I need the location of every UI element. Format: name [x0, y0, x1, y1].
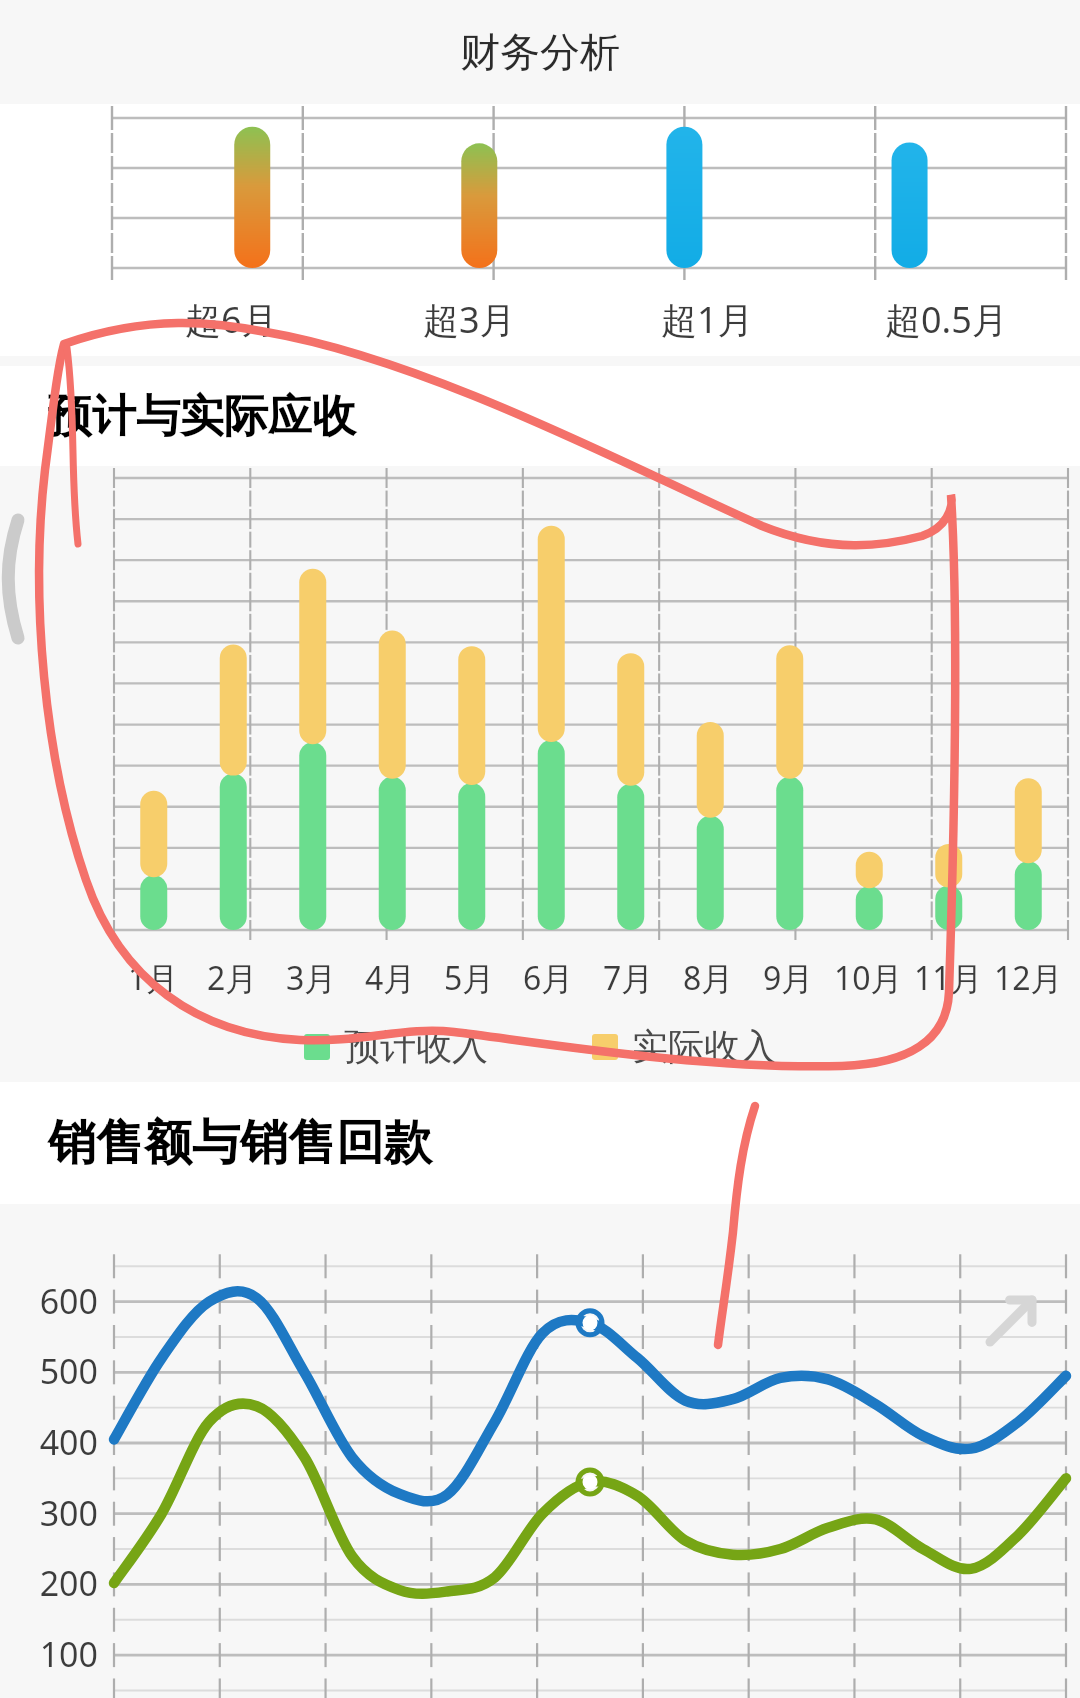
staticText: 财务分析 [460, 27, 620, 77]
staticText: 100 [0, 1631, 98, 1677]
button[interactable]: 550 [0, 466, 1080, 1082]
button[interactable]: 600 [0, 1204, 1080, 1698]
staticText: 200 [0, 1560, 98, 1606]
staticText: 600 [0, 1278, 98, 1324]
staticText: 超3月 [423, 295, 516, 344]
staticText: 预计收入 [344, 1024, 488, 1069]
staticText: 超1月 [661, 295, 754, 344]
button[interactable]: 销售额与销售回款 [0, 1082, 1080, 1204]
staticText: 400 [0, 1419, 98, 1465]
staticText: 3月 [286, 956, 337, 1000]
button[interactable]: 预计收入 [304, 1024, 488, 1069]
staticText: 1月 [128, 956, 179, 1000]
staticText: 2月 [207, 956, 258, 1000]
staticText: 超0.5月 [885, 295, 1008, 344]
staticText: 5月 [444, 956, 495, 1000]
staticText: 300 [0, 1490, 98, 1536]
button[interactable]: 预计与实际应收 [0, 366, 1080, 466]
button[interactable]: 实际收入 [592, 1024, 776, 1069]
staticText: 超6月 [185, 295, 278, 344]
staticText: 12月 [994, 956, 1063, 1000]
staticText: 10月 [834, 956, 903, 1000]
staticText: 销售额与销售回款 [48, 1113, 432, 1173]
staticText: 6月 [523, 956, 574, 1000]
staticText: 8月 [683, 956, 734, 1000]
button[interactable]: 150 [0, 104, 1080, 356]
staticText: 11月 [914, 956, 983, 1000]
staticText: 500 [0, 1348, 98, 1394]
staticText: 4月 [365, 956, 416, 1000]
staticText: 预计与实际应收 [48, 389, 356, 444]
staticText: 实际收入 [632, 1024, 776, 1069]
staticText: 9月 [763, 956, 814, 1000]
staticText: 7月 [603, 956, 654, 1000]
